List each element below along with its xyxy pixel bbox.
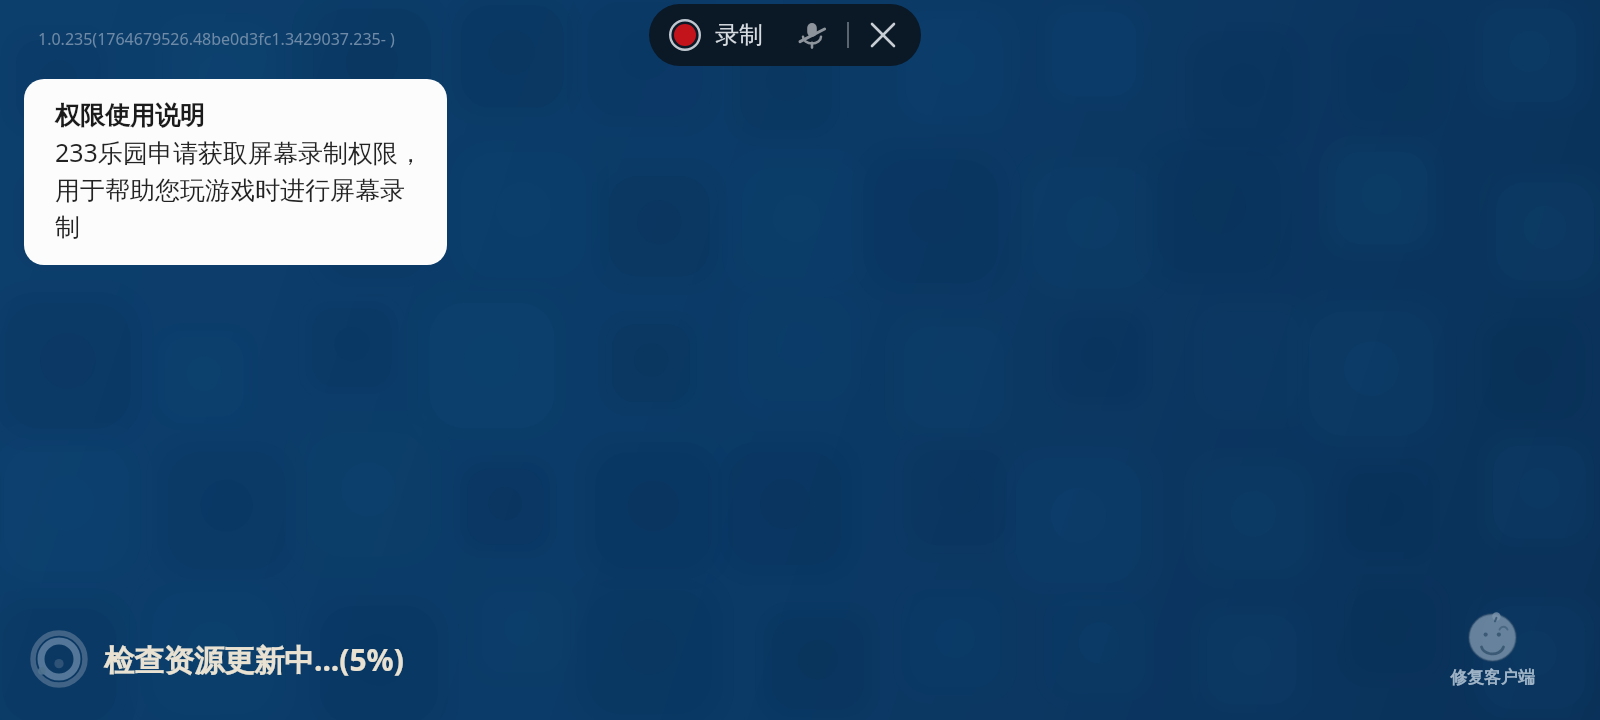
staticText: 233乐园申请获取屏幕录制权限，用于帮助您玩游戏时进行屏幕录制 (55, 135, 427, 243)
staticText: 修复客户端 (1450, 667, 1535, 688)
button[interactable]: 录制 (715, 20, 763, 50)
button[interactable]: 开始录制 (663, 13, 707, 57)
staticText: 权限使用说明 (55, 100, 205, 131)
staticText: 1.0.235(1764679526.48be0d3fc1.3429037.23… (38, 28, 395, 50)
button[interactable]: 权限使用说明 (24, 79, 447, 265)
button[interactable]: 麦克风已静音 (789, 12, 835, 58)
staticText: 检查资源更新中...(5%) (104, 639, 404, 680)
button[interactable]: 检查资源更新中...(5%) (30, 630, 404, 688)
button[interactable]: 修复客户端 (1446, 609, 1539, 692)
button[interactable]: 关闭 (861, 13, 905, 57)
